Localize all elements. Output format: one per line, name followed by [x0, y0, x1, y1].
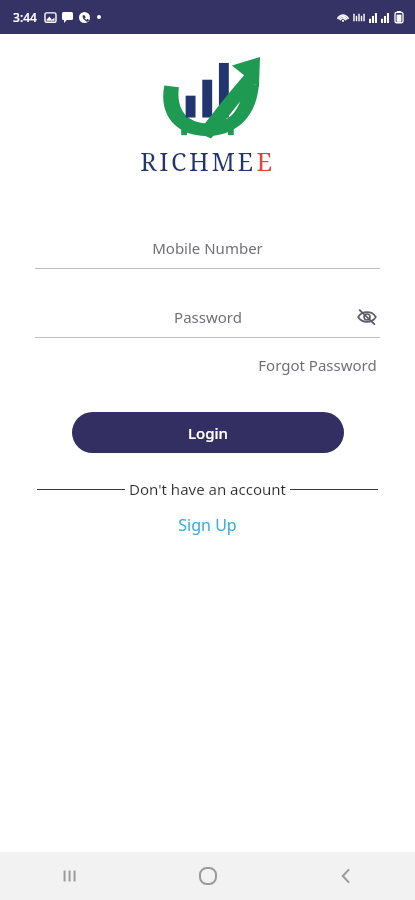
- button[interactable]: Back: [277, 852, 415, 900]
- staticText: E: [256, 144, 275, 178]
- staticText: Sign Up: [178, 514, 237, 536]
- staticText: RICHME: [140, 144, 256, 178]
- button[interactable]: Home: [139, 852, 277, 900]
- button[interactable]: Password: [35, 303, 380, 338]
- staticText: Password: [174, 307, 242, 327]
- staticText: Don't have an account: [129, 479, 286, 499]
- staticText: Login: [188, 423, 228, 443]
- button[interactable]: Mobile Number: [35, 234, 380, 269]
- button[interactable]: Show password: [354, 304, 380, 330]
- button[interactable]: Sign Up: [170, 511, 245, 539]
- button[interactable]: Recent apps: [0, 852, 139, 900]
- button[interactable]: Login: [72, 412, 344, 453]
- staticText: Forgot Password: [258, 355, 377, 375]
- button[interactable]: Forgot Password: [256, 352, 379, 378]
- staticText: Mobile Number: [152, 238, 263, 258]
- staticText: 3:44: [13, 9, 37, 25]
